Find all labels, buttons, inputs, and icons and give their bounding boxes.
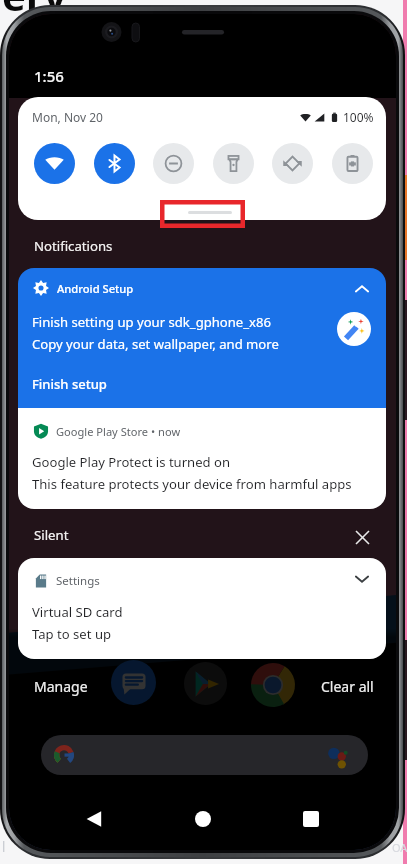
button[interactable]: Drag handle highlight <box>160 200 245 228</box>
staticText: Finish setting up your sdk_gphone_x86 <box>32 313 271 331</box>
staticText: Silent <box>34 526 69 544</box>
button[interactable]: Collapse <box>348 275 376 303</box>
button[interactable]: Battery saver <box>332 143 373 184</box>
button[interactable]: Back <box>81 806 107 832</box>
button[interactable]: Expand <box>348 565 376 593</box>
button[interactable]: Chrome <box>250 662 296 708</box>
button[interactable]: Do not disturb <box>153 143 194 184</box>
staticText: Mon, Nov 20 <box>32 109 103 125</box>
staticText: Android Setup <box>57 281 134 296</box>
staticText: This feature protects your device from h… <box>32 475 352 493</box>
staticText: Tap to set up <box>32 625 112 643</box>
staticText: Finish setup <box>32 375 107 393</box>
button[interactable]: Search <box>41 735 368 775</box>
button[interactable]: Wi-Fi <box>34 143 75 184</box>
button[interactable]: Android Setup <box>18 268 386 408</box>
staticText: Notifications <box>34 237 113 255</box>
staticText: Manage <box>34 677 88 696</box>
button[interactable]: Flashlight <box>213 143 254 184</box>
button[interactable]: Settings <box>18 558 386 659</box>
button[interactable]: Auto-rotate <box>272 143 313 184</box>
button[interactable]: Google Play Store • now <box>18 408 386 509</box>
staticText: erv <box>2 0 67 22</box>
staticText: | <box>1 838 7 852</box>
staticText: Google Play Protect is turned on <box>32 453 231 471</box>
button[interactable]: Home <box>190 806 216 832</box>
button[interactable]: Bluetooth <box>94 143 135 184</box>
button[interactable]: Clear silent notifications <box>347 522 377 552</box>
staticText: Clear all <box>321 677 374 696</box>
button[interactable]: Clear all <box>315 671 380 702</box>
staticText: 100% <box>343 109 374 125</box>
staticText: 1:56 <box>34 66 64 86</box>
button[interactable]: Recent apps <box>298 806 324 832</box>
staticText: OAD <box>392 840 407 855</box>
staticText: Virtual SD card <box>32 603 123 621</box>
button[interactable]: Messages <box>110 659 157 706</box>
staticText: Settings <box>56 573 100 589</box>
button[interactable]: Manage <box>28 671 94 702</box>
button[interactable]: Play Store <box>182 660 228 706</box>
staticText: Copy your data, set wallpaper, and more <box>32 335 279 353</box>
staticText: Google Play Store • now <box>56 424 181 439</box>
